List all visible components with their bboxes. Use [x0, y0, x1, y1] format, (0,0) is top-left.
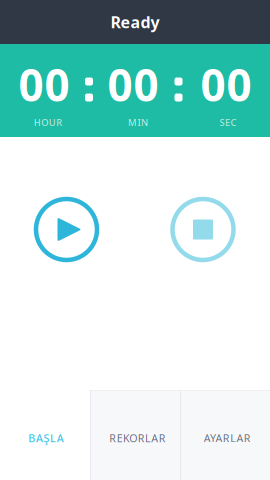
- staticText: HOUR: [34, 116, 62, 129]
- staticText: Ready: [110, 11, 159, 33]
- button[interactable]: Start: [33, 196, 99, 262]
- staticText: REKORLAR: [109, 431, 166, 445]
- button[interactable]: REKORLAR: [90, 390, 180, 480]
- button[interactable]: BAŞLA: [0, 390, 90, 480]
- button[interactable]: Stop: [170, 196, 236, 262]
- staticText: 00: [18, 55, 69, 114]
- staticText: MIN: [128, 116, 148, 129]
- staticText: SEC: [219, 116, 236, 129]
- staticText: 00: [200, 55, 251, 114]
- staticText: AYARLAR: [204, 431, 251, 445]
- staticText: BAŞLA: [28, 431, 64, 445]
- staticText: 00: [107, 55, 158, 114]
- button[interactable]: AYARLAR: [180, 390, 270, 480]
